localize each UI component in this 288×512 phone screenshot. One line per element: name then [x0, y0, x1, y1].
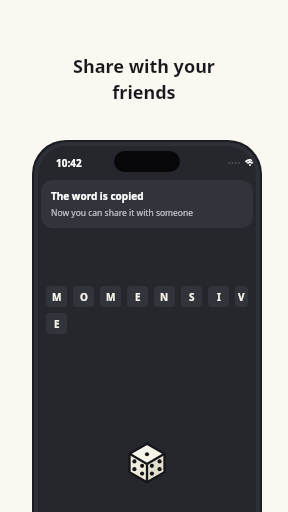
staticText: O [80, 290, 88, 304]
button[interactable]: E [46, 313, 67, 334]
button[interactable]: S [181, 286, 202, 307]
staticText: 10:42 [56, 156, 82, 170]
staticText: M [106, 290, 116, 304]
button[interactable]: M [100, 286, 121, 307]
staticText: M [52, 290, 62, 304]
button[interactable]: Random word [124, 440, 170, 486]
staticText: The word is copied [51, 189, 144, 203]
button[interactable]: V [235, 286, 248, 307]
button[interactable]: The word is copied [41, 180, 253, 228]
button[interactable]: E [127, 286, 148, 307]
button[interactable]: M [46, 286, 67, 307]
button[interactable]: O [73, 286, 94, 307]
button[interactable]: I [208, 286, 229, 307]
staticText: E [54, 317, 60, 331]
staticText: N [160, 290, 169, 304]
staticText: Now you can share it with someone [51, 207, 194, 219]
staticText: I [217, 290, 221, 304]
staticText: E [135, 290, 141, 304]
staticText: S [189, 290, 195, 304]
staticText: V [238, 290, 245, 304]
staticText: Share with your friends [24, 54, 264, 104]
button[interactable]: N [154, 286, 175, 307]
